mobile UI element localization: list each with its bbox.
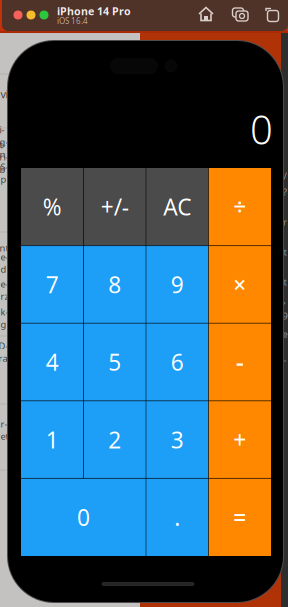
staticText: 5 bbox=[108, 347, 121, 377]
button[interactable]: = bbox=[208, 478, 271, 556]
staticText: ? bbox=[283, 186, 287, 198]
staticText: - bbox=[283, 354, 286, 366]
staticText: 0 bbox=[250, 102, 273, 155]
staticText: + bbox=[233, 424, 246, 455]
staticText: Sp bbox=[0, 161, 8, 185]
staticText: 9 bbox=[282, 310, 287, 322]
button[interactable]: 2 bbox=[83, 401, 146, 478]
button[interactable]: 5 bbox=[83, 323, 146, 401]
staticText: 4 bbox=[46, 347, 59, 377]
button[interactable]: . bbox=[146, 478, 208, 556]
staticText: 1 bbox=[46, 424, 59, 455]
staticText: iPhone 14 Pro bbox=[57, 4, 131, 18]
staticText: +/- bbox=[101, 192, 129, 222]
staticText: r bbox=[283, 216, 287, 228]
staticText: vi bbox=[0, 87, 8, 101]
staticText: trib bbox=[0, 138, 8, 176]
button[interactable]: Screenshot bbox=[227, 1, 253, 27]
button[interactable]: Rotate bbox=[259, 1, 285, 27]
button[interactable]: 4 bbox=[21, 323, 83, 401]
staticText: - bbox=[236, 345, 244, 379]
button[interactable]: ÷ bbox=[208, 168, 271, 246]
staticText: Dra bbox=[0, 340, 8, 364]
staticText: t bbox=[283, 276, 286, 288]
staticText: erz bbox=[0, 278, 8, 302]
staticText: e bbox=[282, 328, 287, 340]
staticText: iOS 16.4 bbox=[57, 16, 88, 26]
staticText: kg bbox=[0, 306, 8, 330]
staticText: ÷ bbox=[233, 192, 246, 222]
button[interactable]: AC bbox=[146, 168, 208, 246]
staticText: ign bbox=[0, 123, 8, 161]
button[interactable]: +/- bbox=[83, 168, 146, 246]
staticText: 8 bbox=[108, 269, 121, 299]
button[interactable]: % bbox=[21, 168, 83, 246]
staticText: 7 bbox=[46, 269, 59, 299]
staticText: ret bbox=[0, 418, 8, 442]
button[interactable]: 8 bbox=[83, 246, 146, 323]
staticText: / bbox=[283, 170, 286, 182]
button[interactable]: 3 bbox=[146, 401, 208, 478]
button[interactable]: - bbox=[208, 323, 271, 401]
button[interactable]: + bbox=[208, 401, 271, 478]
staticText: 6 bbox=[171, 347, 184, 377]
staticText: ed bbox=[0, 251, 8, 275]
button[interactable]: 9 bbox=[146, 246, 208, 323]
staticText: AC bbox=[163, 192, 191, 222]
staticText: 0 bbox=[77, 502, 90, 532]
button[interactable]: × bbox=[208, 246, 271, 323]
staticText: 2 bbox=[108, 424, 121, 455]
button[interactable]: 7 bbox=[21, 246, 83, 323]
staticText: % bbox=[43, 192, 62, 222]
staticText: 3 bbox=[171, 424, 184, 455]
staticText: = bbox=[233, 502, 246, 532]
staticText: t bbox=[283, 246, 286, 258]
staticText: 9 bbox=[171, 269, 184, 299]
button[interactable]: 6 bbox=[146, 323, 208, 401]
button[interactable]: Home bbox=[193, 1, 219, 27]
button[interactable]: 0 bbox=[21, 478, 146, 556]
staticText: nt bbox=[0, 242, 8, 254]
button[interactable]: 1 bbox=[21, 401, 83, 478]
staticText: × bbox=[233, 269, 246, 299]
staticText: . bbox=[174, 502, 180, 532]
staticText: , bbox=[283, 294, 286, 306]
